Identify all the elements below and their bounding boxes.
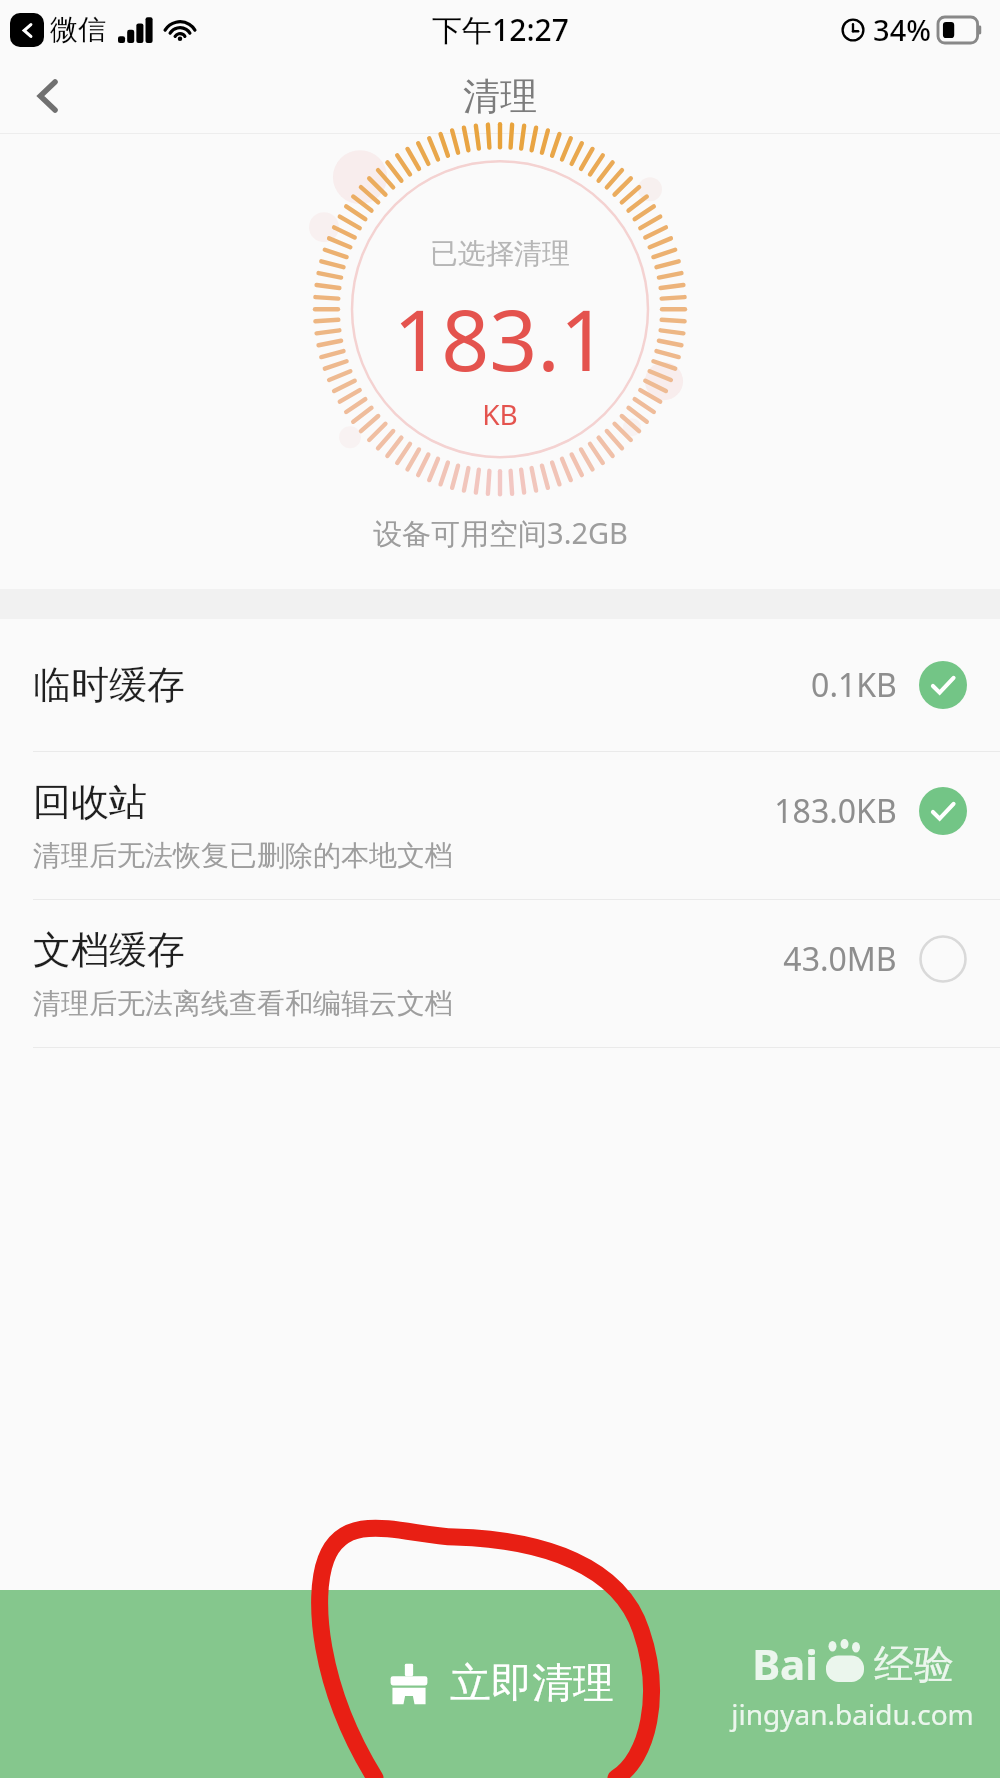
staticText: 微信 <box>50 12 106 47</box>
staticText: jingyan.baidu.com <box>731 1695 974 1733</box>
staticText: 0.1KB <box>811 663 897 707</box>
staticText: 183.0KB <box>774 789 897 833</box>
staticText: 设备可用空间3.2GB <box>373 513 628 553</box>
staticText: 立即清理 <box>450 1658 614 1710</box>
staticText: Bai <box>752 1635 818 1692</box>
staticText: 43.0MB <box>783 937 897 981</box>
staticText: 文档缓存 <box>33 926 185 974</box>
button[interactable]: Back <box>16 64 80 128</box>
staticText: 临时缓存 <box>33 661 185 709</box>
button[interactable]: 立即清理 <box>0 1590 1000 1778</box>
button[interactable]: 文档缓存 <box>0 900 1000 1047</box>
staticText: 清理后无法离线查看和编辑云文档 <box>33 986 453 1021</box>
staticText: 清理 <box>463 73 537 120</box>
staticText: 下午12:27 <box>432 9 569 50</box>
staticText: 经验 <box>874 1639 954 1689</box>
staticText: 183.1 <box>393 281 608 395</box>
staticText: 34% <box>873 10 931 49</box>
button[interactable]: 临时缓存 <box>0 619 1000 751</box>
staticText: 已选择清理 <box>430 236 570 271</box>
staticText: 回收站 <box>33 778 147 826</box>
staticText: 清理后无法恢复已删除的本地文档 <box>33 838 453 873</box>
staticText: KB <box>482 395 518 433</box>
button[interactable]: 回收站 <box>0 752 1000 899</box>
